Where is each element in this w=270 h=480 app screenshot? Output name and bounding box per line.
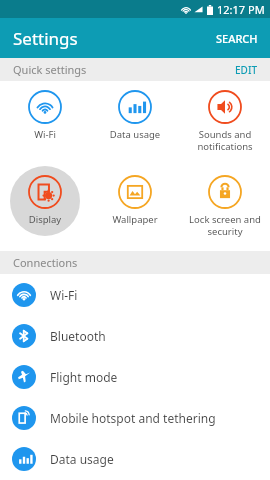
button[interactable]: Wi-Fi	[0, 274, 270, 315]
button[interactable]: Sounds and notifications	[180, 81, 270, 166]
button[interactable]: SEARCH	[204, 22, 270, 55]
button[interactable]: Bluetooth	[0, 315, 270, 356]
button[interactable]: EDIT	[223, 59, 270, 81]
staticText: Bluetooth	[50, 328, 106, 344]
staticText: Mobile hotspot and tethering	[50, 410, 216, 426]
staticText: EDIT	[235, 63, 258, 77]
staticText: Data usage	[92, 128, 178, 141]
staticText: 12:17 PM	[217, 2, 265, 17]
staticText: Settings	[13, 27, 78, 50]
button[interactable]: Display	[0, 166, 90, 251]
button[interactable]: Wi-Fi	[0, 81, 90, 166]
button[interactable]: Flight mode	[0, 356, 270, 397]
button[interactable]: Data usage	[90, 81, 180, 166]
button[interactable]: Wallpaper	[90, 166, 180, 251]
staticText: Connections	[13, 255, 78, 270]
staticText: Wallpaper	[92, 213, 178, 226]
staticText: Data usage	[50, 451, 114, 467]
staticText: SEARCH	[216, 31, 258, 46]
button[interactable]: Mobile hotspot and tethering	[0, 397, 270, 438]
button[interactable]: Lock screen and security	[180, 166, 270, 251]
staticText: Flight mode	[50, 369, 118, 385]
staticText: Display	[2, 213, 88, 226]
staticText: Lock screen and security	[182, 213, 268, 237]
staticText: Wi-Fi	[50, 287, 78, 303]
staticText: Wi-Fi	[2, 128, 88, 141]
staticText: Sounds and notifications	[182, 128, 268, 152]
staticText: Quick settings	[13, 62, 87, 77]
button[interactable]: Data usage	[0, 438, 270, 479]
